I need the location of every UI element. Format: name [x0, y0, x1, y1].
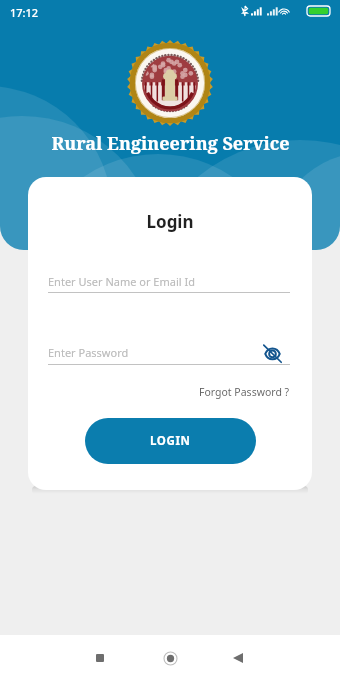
staticText: 17:12: [10, 5, 39, 20]
button[interactable]: Forgot Password ?: [193, 380, 296, 404]
staticText: Enter Password: [48, 345, 129, 360]
staticText: Login: [146, 210, 194, 233]
staticText: Rural Engineering Service: [51, 131, 290, 156]
button[interactable]: Show password: [260, 341, 284, 365]
button[interactable]: LOGIN: [85, 418, 256, 464]
staticText: LOGIN: [150, 433, 191, 449]
staticText: Enter User Name or Email Id: [48, 274, 195, 289]
button[interactable]: Home: [150, 638, 190, 678]
button[interactable]: Back: [218, 638, 258, 678]
button[interactable]: Recents: [80, 638, 120, 678]
